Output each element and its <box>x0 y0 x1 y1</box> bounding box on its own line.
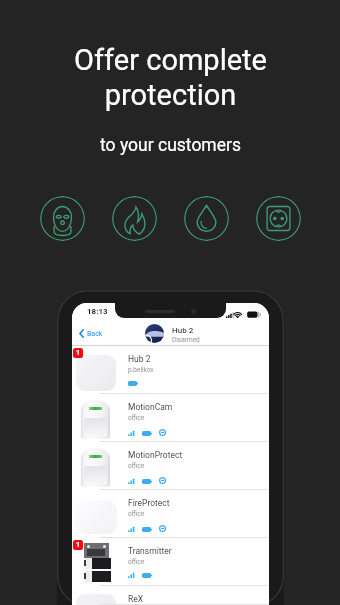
staticText: 1 <box>76 541 81 549</box>
staticText: Back <box>87 330 103 338</box>
button[interactable]: FireProtect <box>72 490 269 538</box>
staticText: office <box>128 510 145 518</box>
button[interactable]: Back <box>76 324 106 343</box>
staticText: Disarmed <box>172 336 200 344</box>
staticText: Offer complete protection <box>74 43 267 112</box>
staticText: office <box>128 414 145 422</box>
staticText: 18:13 <box>87 307 108 316</box>
button[interactable]: Flood protection <box>184 196 229 241</box>
button[interactable]: MotionProtect <box>72 442 269 490</box>
staticText: office <box>128 558 145 566</box>
staticText: Transmitter <box>128 546 172 556</box>
staticText: Hub 2 <box>128 354 151 364</box>
button[interactable]: MotionCam <box>72 394 269 442</box>
staticText: ReX <box>128 594 144 604</box>
button[interactable]: Intrusion protection <box>40 196 85 241</box>
staticText: office <box>128 462 145 470</box>
staticText: Hub 2 <box>172 326 194 335</box>
button[interactable]: Fire protection <box>112 196 157 241</box>
staticText: p.belikov <box>128 366 154 374</box>
staticText: MotionProtect <box>128 450 183 460</box>
staticText: FireProtect <box>128 498 170 508</box>
button[interactable]: 1 <box>72 346 269 394</box>
button[interactable]: 1 <box>72 538 269 586</box>
staticText: to your customers <box>100 135 241 156</box>
button[interactable]: Power protection <box>256 196 301 241</box>
staticText: MotionCam <box>128 402 173 412</box>
button[interactable]: ReX <box>72 586 269 605</box>
staticText: 1 <box>76 349 81 357</box>
